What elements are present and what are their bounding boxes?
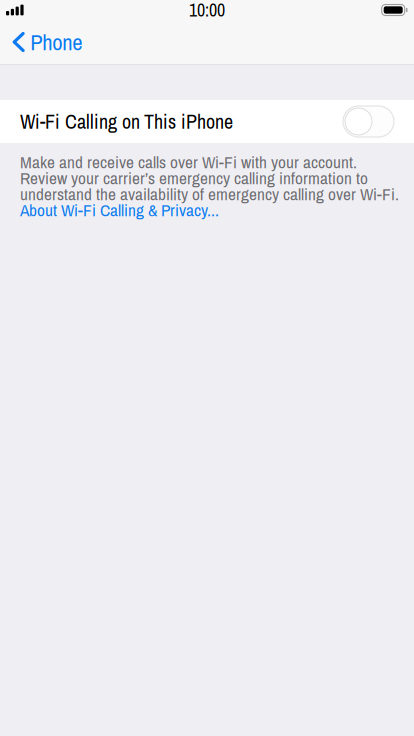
- button[interactable]: Phone: [0, 20, 92, 64]
- staticText: About Wi-Fi Calling & Privacy...: [20, 198, 219, 222]
- staticText: 10:00: [189, 0, 225, 22]
- staticText: understand the availability of emergency…: [20, 182, 399, 206]
- button[interactable]: Wi-Fi Calling on This iPhone, off: [343, 106, 394, 137]
- staticText: Wi-Fi Calling on This iPhone: [20, 108, 233, 135]
- staticText: Review your carrier’s emergency calling …: [20, 166, 368, 190]
- staticText: Make and receive calls over Wi-Fi with y…: [20, 150, 357, 174]
- button[interactable]: Wi-Fi Calling on This iPhone: [0, 100, 414, 143]
- button[interactable]: About Wi-Fi Calling & Privacy...: [20, 202, 219, 218]
- staticText: Phone: [30, 27, 82, 57]
